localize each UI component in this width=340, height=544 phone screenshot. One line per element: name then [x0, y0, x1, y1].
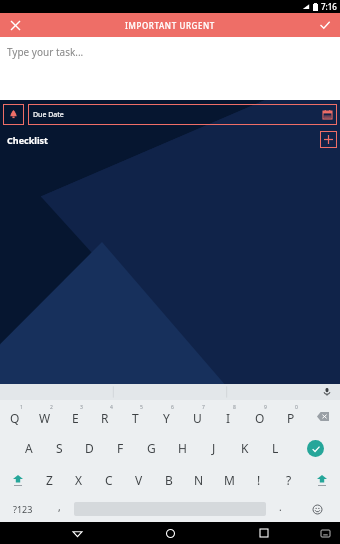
staticText: H	[178, 440, 187, 456]
staticText: C	[105, 472, 113, 488]
button[interactable]: Due Date	[28, 104, 337, 125]
staticText: IMPORTANT URGENT	[125, 20, 215, 31]
button[interactable]: Emoji	[295, 496, 340, 522]
staticText: 1	[20, 404, 23, 411]
button[interactable]: D	[74, 432, 105, 464]
button[interactable]: Hide keyboard	[318, 526, 332, 540]
staticText: K	[241, 440, 249, 456]
button[interactable]: L	[260, 432, 291, 464]
staticText: G	[147, 440, 156, 456]
button[interactable]: ,	[45, 496, 74, 522]
staticText: Checklist	[7, 134, 320, 146]
button[interactable]: X	[64, 464, 94, 496]
staticText: M	[224, 472, 235, 488]
button[interactable]: V	[124, 464, 154, 496]
staticText: X	[75, 472, 83, 488]
button[interactable]: Add checklist item	[320, 131, 337, 148]
staticText: ,	[58, 500, 61, 514]
button[interactable]: C	[94, 464, 124, 496]
button[interactable]: 2	[30, 400, 60, 432]
button[interactable]: N	[184, 464, 214, 496]
staticText: 2	[50, 404, 53, 411]
button[interactable]: Voice input	[321, 386, 333, 398]
button[interactable]: ?	[274, 464, 304, 496]
button[interactable]: Shift	[304, 464, 340, 496]
button[interactable]: B	[154, 464, 184, 496]
button[interactable]: Enter	[291, 432, 340, 464]
staticText: 9	[264, 404, 267, 411]
staticText: B	[165, 472, 173, 488]
button[interactable]: M	[214, 464, 244, 496]
staticText: A	[25, 440, 33, 456]
button[interactable]: Shift	[0, 464, 35, 496]
button[interactable]: K	[229, 432, 260, 464]
button[interactable]: Back	[30, 522, 124, 544]
button[interactable]: 5	[120, 400, 151, 432]
staticText: I	[226, 410, 231, 426]
button[interactable]: Recents	[217, 522, 310, 544]
staticText: Q	[10, 410, 20, 426]
staticText: 0	[295, 404, 298, 411]
staticText: Z	[46, 472, 53, 488]
staticText: U	[193, 410, 202, 426]
staticText: D	[85, 440, 94, 456]
staticText: 6	[171, 404, 174, 411]
staticText: F	[117, 440, 124, 456]
button[interactable]: 7	[182, 400, 213, 432]
button[interactable]: Backspace	[306, 400, 340, 432]
button[interactable]: J	[198, 432, 229, 464]
button[interactable]: .	[266, 496, 295, 522]
staticText: R	[101, 410, 109, 426]
button[interactable]: A	[14, 432, 44, 464]
staticText: O	[255, 410, 265, 426]
button[interactable]: 3	[60, 400, 90, 432]
staticText: L	[272, 440, 279, 456]
button[interactable]: H	[167, 432, 198, 464]
button[interactable]: 4	[90, 400, 120, 432]
button[interactable]: Type your task...	[0, 37, 340, 100]
staticText: 5	[140, 404, 143, 411]
staticText: 8	[233, 404, 236, 411]
staticText: P	[287, 410, 295, 426]
staticText: Due Date	[33, 110, 322, 120]
other: Pick date	[322, 109, 333, 120]
staticText: 7	[202, 404, 205, 411]
staticText: W	[39, 410, 51, 426]
staticText: ?	[286, 472, 292, 488]
staticText: S	[56, 440, 63, 456]
staticText: !	[257, 472, 261, 488]
staticText: T	[132, 410, 139, 426]
staticText: V	[135, 472, 143, 488]
staticText: Y	[163, 410, 170, 426]
staticText: E	[72, 410, 79, 426]
button[interactable]: Close	[6, 16, 24, 34]
button[interactable]: Home	[124, 522, 217, 544]
button[interactable]: 8	[213, 400, 244, 432]
staticText: 7:16	[321, 1, 337, 12]
staticText: 3	[80, 404, 83, 411]
button[interactable]: 1	[0, 400, 30, 432]
button[interactable]: 9	[244, 400, 275, 432]
staticText: N	[194, 472, 204, 488]
staticText: .	[279, 500, 282, 514]
staticText: 4	[110, 404, 113, 411]
button[interactable]: 6	[151, 400, 182, 432]
staticText: J	[212, 440, 216, 456]
button[interactable]: 0	[275, 400, 306, 432]
button[interactable]: ?123	[0, 496, 45, 522]
button[interactable]: Reminder	[3, 104, 24, 125]
staticText: ?123	[13, 503, 33, 515]
button[interactable]: Save	[316, 16, 334, 34]
button[interactable]: F	[105, 432, 136, 464]
button[interactable]: !	[244, 464, 274, 496]
button[interactable]: Z	[35, 464, 64, 496]
button[interactable]: G	[136, 432, 167, 464]
button[interactable]: S	[44, 432, 74, 464]
staticText: Type your task...	[7, 45, 84, 59]
